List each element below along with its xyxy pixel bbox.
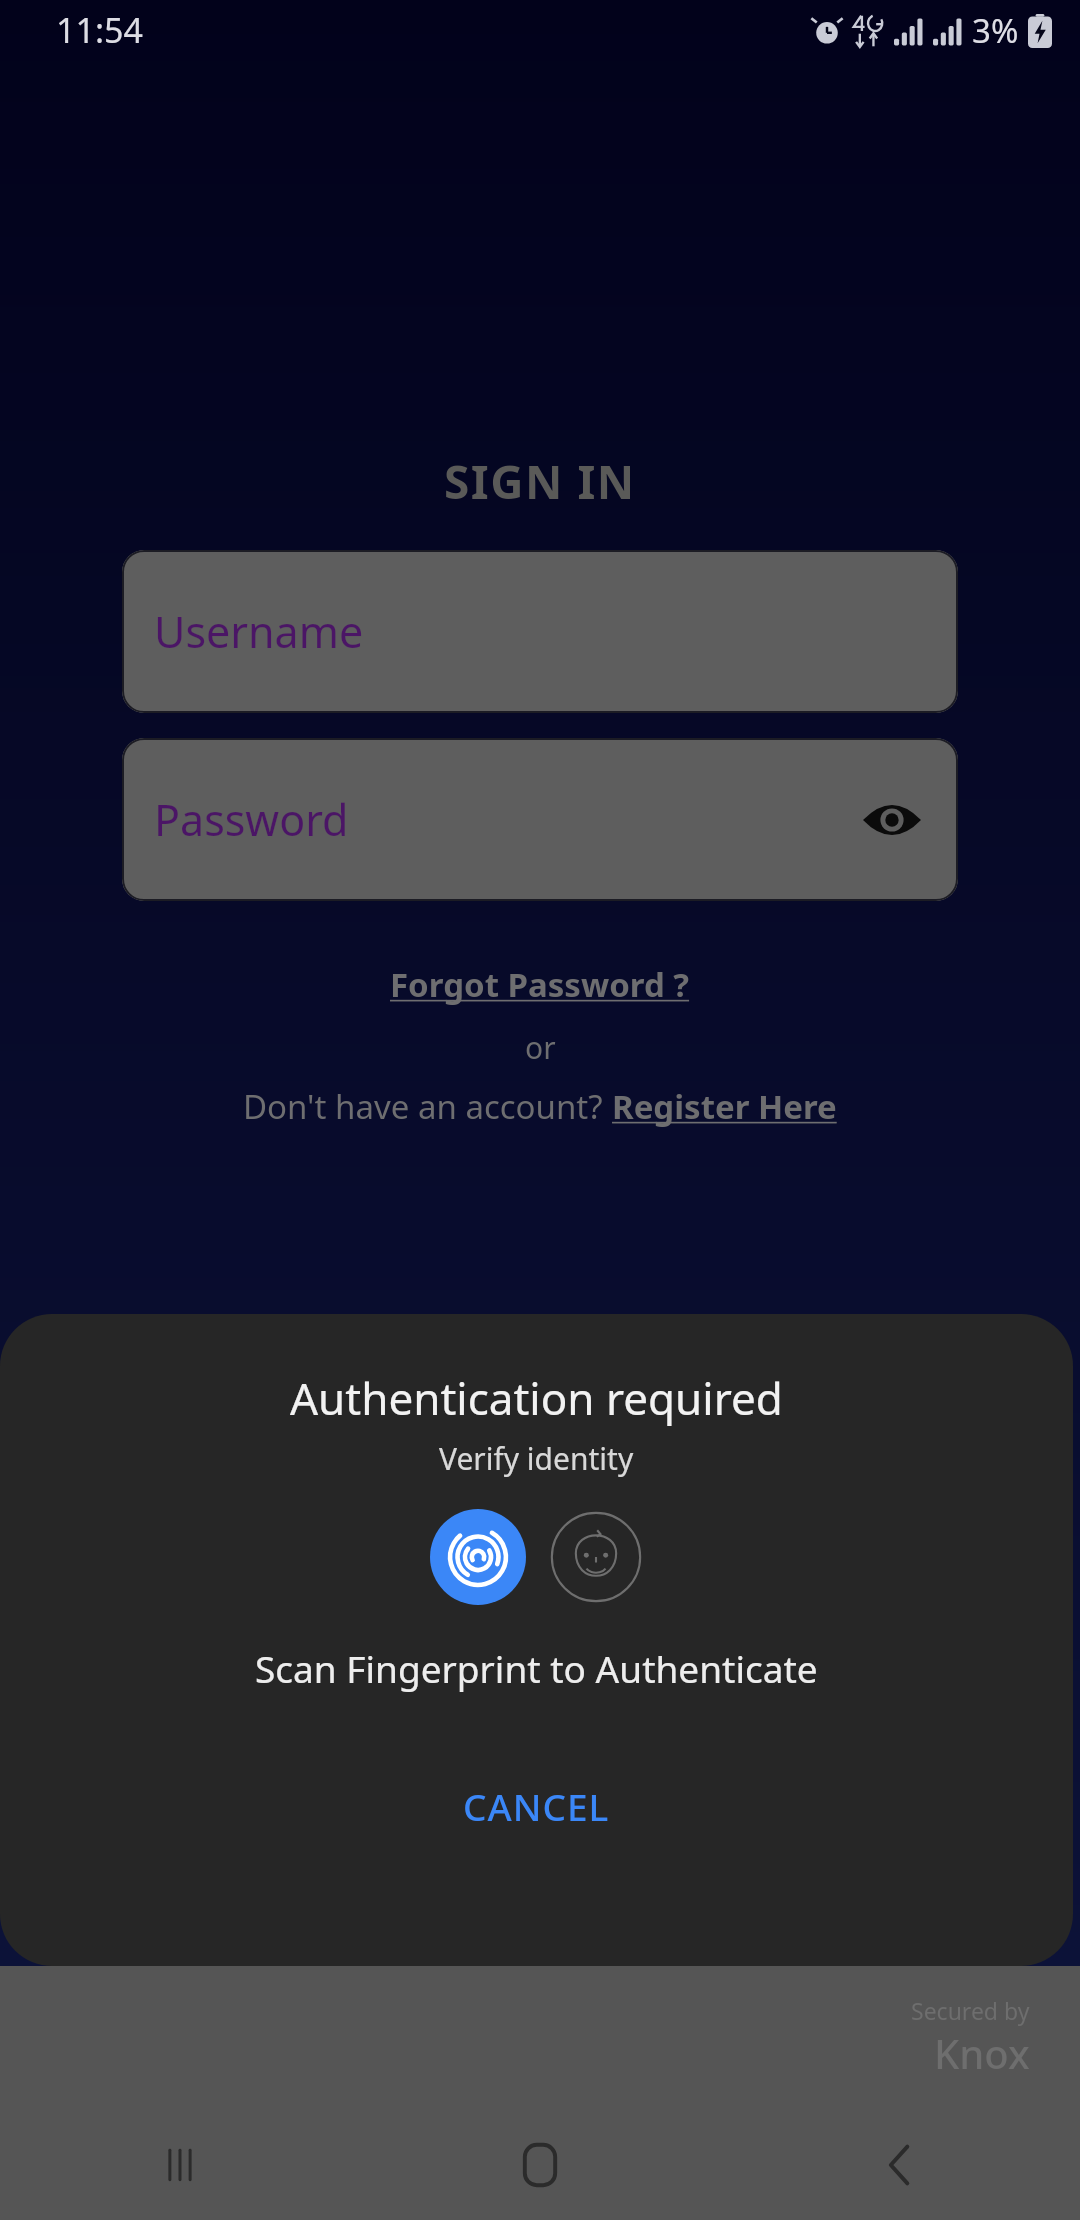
staticText: Don't have an account? xyxy=(243,1084,612,1129)
button[interactable]: Register Here xyxy=(612,1084,837,1129)
staticText: Authentication required xyxy=(290,1368,783,1428)
staticText: CANCEL xyxy=(463,1781,610,1831)
staticText: Scan Fingerprint to Authenticate xyxy=(255,1643,818,1693)
button[interactable]: Recent apps xyxy=(0,2110,360,2220)
staticText: Secured by xyxy=(911,1995,1030,2026)
staticText: Verify identity xyxy=(439,1438,634,1479)
button[interactable]: Show password xyxy=(850,778,934,862)
button[interactable]: Face unlock xyxy=(548,1509,644,1605)
staticText: Username xyxy=(154,602,364,661)
staticText: SIGN IN xyxy=(444,450,636,513)
staticText: Forgot Password ? xyxy=(390,962,690,1007)
staticText: Register Here xyxy=(612,1084,837,1129)
staticText: or xyxy=(525,1027,556,1068)
staticText: 11:54 xyxy=(56,7,143,53)
staticText: Knox xyxy=(934,2026,1030,2080)
staticText: Password xyxy=(154,790,349,849)
button[interactable]: Username xyxy=(122,550,958,713)
button[interactable]: Home xyxy=(360,2110,720,2220)
button[interactable]: Forgot Password ? xyxy=(382,958,698,1011)
button[interactable]: Password xyxy=(122,738,958,901)
button[interactable]: Fingerprint xyxy=(430,1509,526,1605)
button[interactable]: CANCEL xyxy=(435,1771,638,1841)
staticText: 3% xyxy=(972,8,1019,53)
